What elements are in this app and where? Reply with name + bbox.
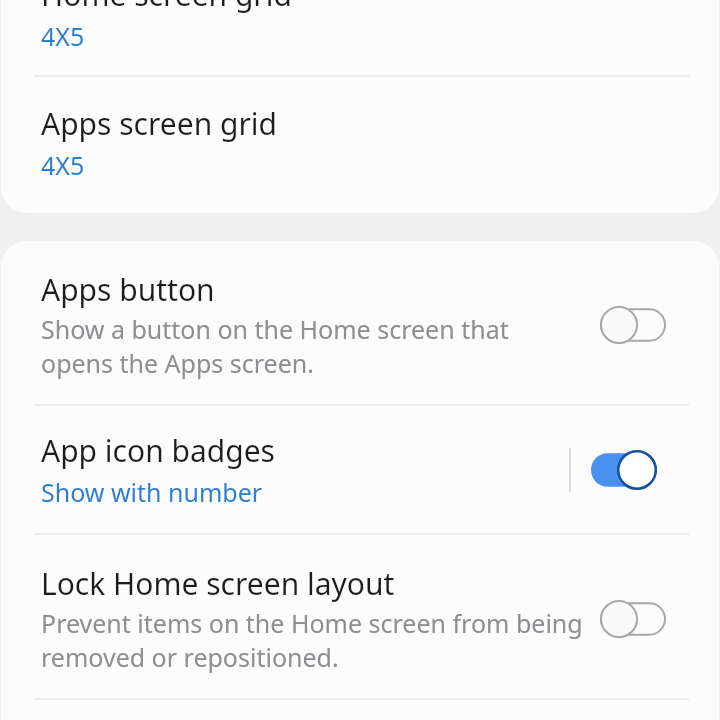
staticText: 4X5 [41,148,85,182]
button[interactable]: Lock Home screen layout toggle, off [600,600,666,638]
button[interactable]: Apps button toggle, off [600,306,666,344]
staticText: Show with number [41,475,263,509]
staticText: Show a button on the Home screen that op… [41,312,586,380]
staticText: 4X5 [41,19,85,53]
staticText: Apps screen grid [41,103,278,144]
button[interactable]: App icon badges toggle, on [591,450,657,490]
button[interactable]: Home screen grid [1,0,719,75]
staticText: Apps button [41,269,215,310]
button[interactable]: Apps button [1,241,719,404]
staticText: Home screen grid [41,0,292,15]
staticText: App icon badges [41,430,275,471]
button[interactable]: Lock Home screen layout [1,535,719,698]
button[interactable]: App icon badges [1,406,719,533]
staticText: Lock Home screen layout [41,563,395,604]
button[interactable]: Apps screen grid [1,77,719,204]
staticText: Prevent items on the Home screen from be… [41,606,586,674]
